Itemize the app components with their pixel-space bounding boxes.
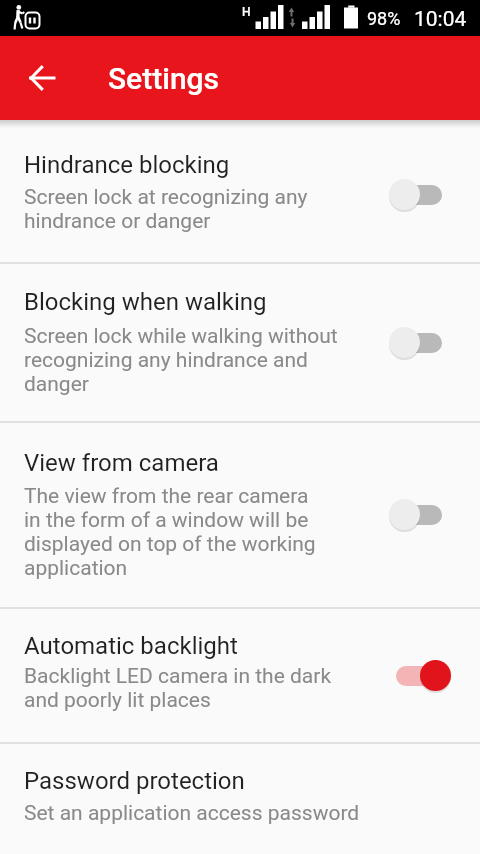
button[interactable]: [18, 54, 66, 102]
staticText: Backlight LED camera in the dark and poo…: [24, 664, 332, 712]
staticText: Automatic backlight: [24, 632, 238, 660]
button[interactable]: [389, 499, 451, 531]
staticText: 10:04: [414, 7, 467, 32]
staticText: Settings: [108, 61, 220, 96]
staticText: Set an application access password: [24, 801, 360, 826]
button[interactable]: Automatic backlight: [0, 609, 480, 742]
button[interactable]: [389, 179, 451, 211]
button[interactable]: [389, 327, 451, 359]
staticText: Screen lock while walking without recogn…: [24, 324, 338, 396]
staticText: H: [242, 5, 251, 19]
staticText: 98%: [367, 8, 401, 29]
button[interactable]: [389, 660, 451, 692]
staticText: Screen lock at recognizing any hindrance…: [24, 185, 308, 233]
staticText: View from camera: [24, 449, 219, 477]
staticText: Hindrance blocking: [24, 151, 230, 179]
button[interactable]: Hindrance blocking: [0, 128, 480, 262]
button[interactable]: Password protection: [0, 744, 480, 854]
button[interactable]: View from camera: [0, 423, 480, 607]
staticText: The view from the rear camera in the for…: [24, 484, 316, 580]
staticText: Password protection: [24, 767, 245, 795]
button[interactable]: Blocking when walking: [0, 264, 480, 421]
staticText: Blocking when walking: [24, 288, 267, 316]
